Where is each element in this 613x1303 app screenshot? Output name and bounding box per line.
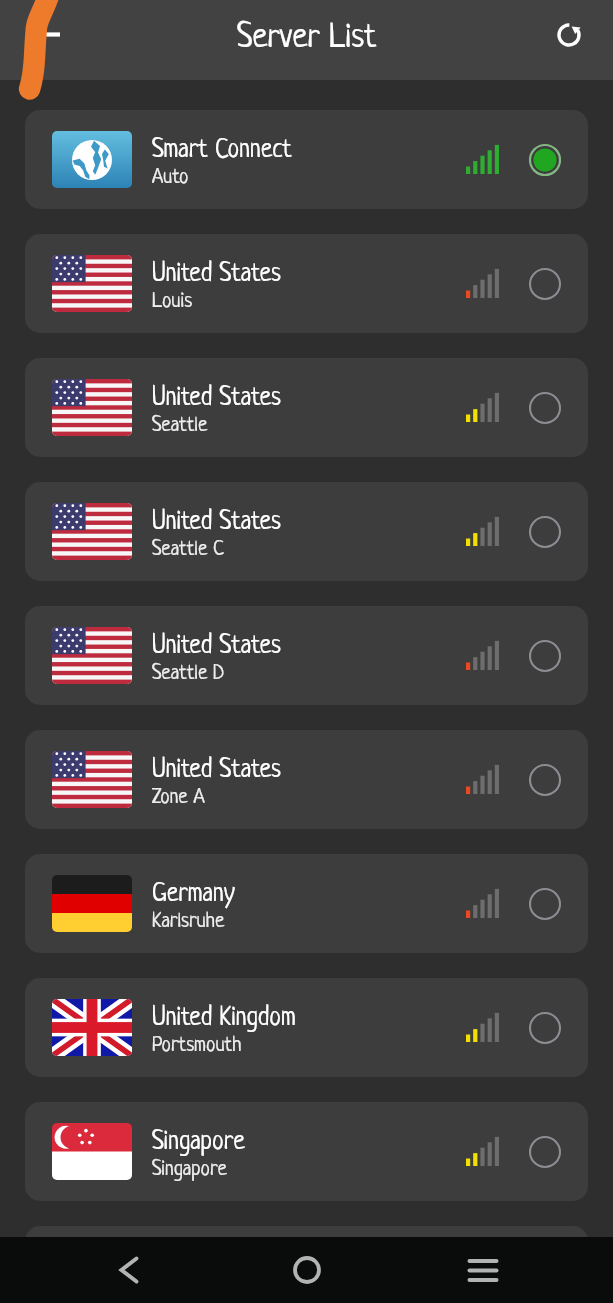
staticText: Auto bbox=[152, 167, 189, 189]
staticText: Zone A bbox=[152, 787, 205, 809]
button[interactable]: Home bbox=[277, 1237, 337, 1303]
staticText: Karlsruhe bbox=[152, 911, 225, 933]
staticText: Louis bbox=[152, 291, 193, 313]
staticText: United States bbox=[152, 633, 281, 660]
staticText: Portsmouth bbox=[152, 1035, 242, 1057]
button[interactable]: Back bbox=[99, 1237, 159, 1303]
button[interactable]: Refresh bbox=[543, 9, 595, 61]
button[interactable]: United States bbox=[25, 730, 588, 829]
staticText: Seattle C bbox=[152, 539, 225, 561]
staticText: Singapore bbox=[152, 1129, 245, 1156]
button[interactable]: Back bbox=[18, 10, 70, 62]
staticText: United States bbox=[152, 509, 281, 536]
button[interactable]: Smart Connect bbox=[25, 110, 588, 209]
button[interactable]: United States bbox=[25, 234, 588, 333]
staticText: United States bbox=[152, 385, 281, 412]
button[interactable]: United States bbox=[25, 482, 588, 581]
staticText: United States bbox=[152, 261, 281, 288]
staticText: United States bbox=[152, 757, 281, 784]
button[interactable]: United Kingdom bbox=[25, 978, 588, 1077]
staticText: Singapore bbox=[152, 1159, 227, 1181]
button[interactable]: Singapore bbox=[25, 1102, 588, 1201]
button[interactable]: Recent apps bbox=[453, 1237, 513, 1303]
staticText: Germany bbox=[152, 881, 235, 908]
staticText: Seattle bbox=[152, 415, 208, 437]
button[interactable]: United States bbox=[25, 606, 588, 705]
staticText: United Kingdom bbox=[152, 1005, 296, 1032]
staticText: Smart Connect bbox=[152, 137, 292, 164]
staticText: Server List bbox=[237, 21, 377, 57]
button[interactable]: Japan bbox=[25, 1226, 588, 1303]
button[interactable]: United States bbox=[25, 358, 588, 457]
staticText: Seattle D bbox=[152, 663, 225, 685]
button[interactable]: Germany bbox=[25, 854, 588, 953]
